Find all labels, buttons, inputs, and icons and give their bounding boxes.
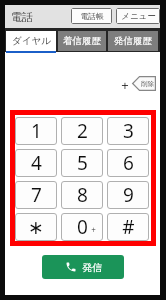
button[interactable]: # (107, 213, 149, 241)
button[interactable]: 6 (107, 149, 149, 177)
staticText: 発信履歴 (114, 35, 152, 47)
staticText: 1 (31, 118, 42, 144)
button[interactable]: ∗ (15, 213, 57, 241)
button[interactable]: 0 (61, 213, 103, 241)
button[interactable]: 着信履歴 (58, 31, 106, 51)
button[interactable]: 発信 (42, 255, 124, 279)
staticText: 8 (77, 182, 88, 208)
button[interactable]: ダイヤル (6, 31, 56, 51)
button[interactable]: 電話帳 (71, 8, 112, 24)
staticText: 5 (77, 150, 88, 176)
button[interactable]: 発信履歴 (108, 31, 158, 51)
staticText: # (122, 214, 135, 240)
staticText: 電話 (11, 10, 33, 24)
staticText: 7 (31, 182, 42, 208)
staticText: ダイヤル (12, 35, 51, 47)
staticText: 2 (77, 118, 88, 144)
button[interactable]: 8 (61, 181, 103, 209)
staticText: 9 (123, 182, 134, 208)
staticText: 発信 (82, 261, 102, 274)
button[interactable]: 1 (15, 117, 57, 145)
staticText: メニュー (121, 11, 156, 22)
staticText: 3 (123, 118, 134, 144)
button[interactable]: 2 (61, 117, 103, 145)
button[interactable]: 削除 (132, 76, 156, 91)
staticText: + (91, 224, 96, 235)
staticText: 削除 (141, 80, 154, 88)
button[interactable]: 7 (15, 181, 57, 209)
button[interactable]: 4 (15, 149, 57, 177)
staticText: + (121, 76, 129, 94)
staticText: ∗ (28, 216, 44, 238)
staticText: 4 (31, 150, 42, 176)
button[interactable]: 9 (107, 181, 149, 209)
button[interactable]: 3 (107, 117, 149, 145)
button[interactable]: メニュー (116, 8, 160, 24)
staticText: 0 (77, 214, 88, 240)
staticText: 電話帳 (80, 11, 104, 21)
staticText: 着信履歴 (63, 35, 101, 47)
button[interactable]: 5 (61, 149, 103, 177)
staticText: 6 (123, 150, 134, 176)
